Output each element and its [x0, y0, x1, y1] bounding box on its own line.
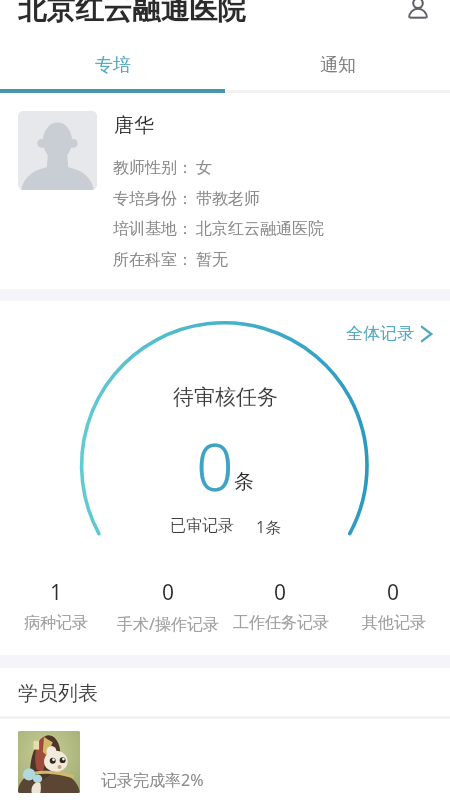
- staticText: 北京红云融通医院: [196, 219, 324, 239]
- button[interactable]: 1: [0, 578, 112, 633]
- button[interactable]: 唐华: [0, 96, 450, 286]
- staticText: 0: [162, 578, 175, 607]
- staticText: 北京红云融通医院: [18, 0, 246, 28]
- staticText: 教师性别：: [113, 158, 193, 178]
- staticText: 全体记录: [346, 323, 414, 344]
- staticText: 唐华: [114, 113, 154, 138]
- staticText: 通知: [320, 54, 356, 77]
- staticText: 0: [387, 578, 400, 607]
- button[interactable]: 待审核任务: [120, 375, 330, 540]
- staticText: 工作任务记录: [233, 613, 329, 633]
- staticText: 0: [196, 420, 234, 510]
- staticText: 手术/操作记录: [117, 613, 219, 635]
- button[interactable]: 0: [112, 578, 224, 635]
- staticText: 带教老师: [196, 189, 260, 209]
- button[interactable]: 0: [224, 578, 337, 633]
- staticText: 条: [234, 469, 254, 494]
- button[interactable]: 通知: [225, 44, 450, 86]
- staticText: 女: [196, 158, 212, 178]
- staticText: 暂无: [196, 250, 228, 270]
- staticText: 培训基地：: [113, 219, 193, 239]
- button[interactable]: 记录完成率2%: [0, 719, 450, 800]
- staticText: 1条: [256, 516, 282, 538]
- staticText: 记录完成率2%: [101, 769, 204, 791]
- staticText: 所在科室：: [113, 250, 193, 270]
- staticText: 学员列表: [18, 681, 98, 706]
- staticText: 其他记录: [362, 613, 426, 633]
- staticText: 已审记录: [170, 516, 234, 536]
- button[interactable]: 0: [337, 578, 450, 633]
- staticText: 专培: [95, 54, 131, 77]
- button[interactable]: Profile: [406, 0, 430, 22]
- staticText: 病种记录: [24, 613, 88, 633]
- staticText: 专培身份：: [113, 189, 193, 209]
- button[interactable]: 全体记录: [342, 320, 436, 347]
- staticText: 1: [50, 578, 63, 607]
- staticText: 待审核任务: [173, 384, 278, 410]
- button[interactable]: 专培: [0, 44, 225, 86]
- staticText: 0: [274, 578, 287, 607]
